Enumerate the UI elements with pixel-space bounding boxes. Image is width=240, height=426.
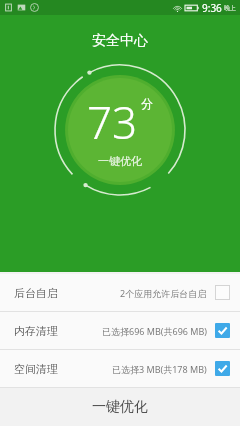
button[interactable]: Selected — [215, 323, 230, 338]
staticText: 一键优化 — [98, 154, 142, 168]
button[interactable]: 一键优化 — [0, 388, 240, 426]
staticText: 晚上 — [224, 4, 236, 12]
staticText: 已选择696 MB(共696 MB) — [102, 325, 207, 337]
button[interactable]: 空间清理 — [0, 350, 240, 387]
staticText: 内存清理 — [14, 324, 58, 338]
staticText: 后台自启 — [14, 286, 58, 300]
staticText: 空间清理 — [14, 362, 58, 376]
staticText: 73 — [87, 92, 138, 152]
staticText: 分 — [141, 96, 153, 111]
button[interactable]: 后台自启 — [0, 274, 240, 311]
staticText: 安全中心 — [92, 32, 148, 50]
button[interactable]: Not selected — [215, 285, 230, 300]
staticText: 2个应用允许后台自启 — [120, 287, 207, 299]
button[interactable]: 内存清理 — [0, 312, 240, 349]
staticText: 9:36 — [202, 1, 222, 15]
staticText: 已选择3 MB(共178 MB) — [112, 363, 207, 375]
staticText: 一键优化 — [92, 398, 148, 416]
button[interactable]: Selected — [215, 361, 230, 376]
button[interactable]: 73 — [81, 92, 159, 168]
